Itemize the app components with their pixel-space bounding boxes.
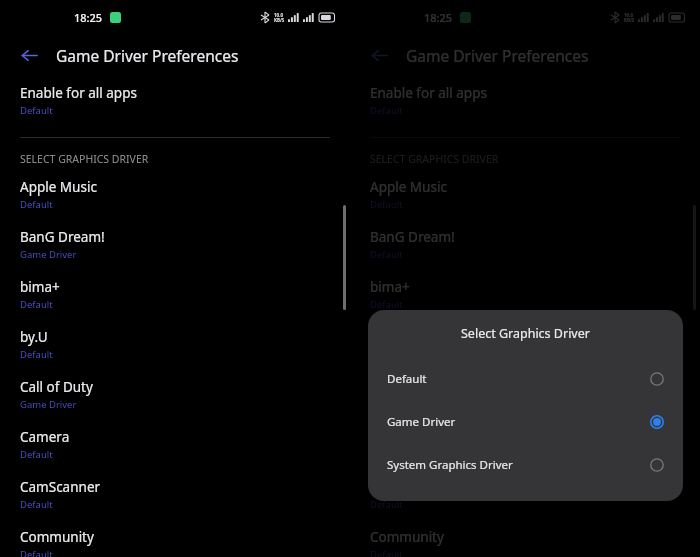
staticText: Apple Music xyxy=(20,178,97,196)
button[interactable]: BanG Dream! xyxy=(350,228,700,261)
staticText: Game Driver Preferences xyxy=(56,45,239,66)
button[interactable]: BanG Dream! xyxy=(0,228,350,261)
button[interactable]: CamScanner xyxy=(0,478,350,511)
button[interactable]: Apple Music xyxy=(0,178,350,211)
staticText: Default xyxy=(370,104,403,117)
staticText: Game Driver xyxy=(387,414,650,430)
button[interactable]: Game Driver xyxy=(368,400,683,443)
staticText: Default xyxy=(370,198,403,211)
staticText: Default xyxy=(370,498,403,511)
button[interactable]: Camera xyxy=(0,428,350,461)
staticText: Default xyxy=(370,298,403,311)
staticText: Select Graphics Driver xyxy=(461,325,590,342)
staticText: Default xyxy=(20,298,53,311)
button[interactable]: CamScanner xyxy=(350,478,700,511)
staticText: bima+ xyxy=(370,278,410,296)
button[interactable]: Community xyxy=(350,528,700,557)
button[interactable]: Enable for all apps xyxy=(350,84,700,117)
staticText: BanG Dream! xyxy=(20,228,105,246)
staticText: Game Driver xyxy=(20,398,77,411)
staticText: 10.0 KB/S xyxy=(274,12,285,24)
staticText: Default xyxy=(20,448,53,461)
staticText: BanG Dream! xyxy=(370,228,455,246)
staticText: Apple Music xyxy=(370,178,447,196)
staticText: Default xyxy=(387,371,650,387)
staticText: Enable for all apps xyxy=(20,84,137,102)
button[interactable]: Call of Duty xyxy=(350,378,700,411)
staticText: Default xyxy=(20,348,53,361)
staticText: CamScanner xyxy=(20,478,101,496)
button[interactable]: by.U xyxy=(0,328,350,361)
button[interactable]: Apple Music xyxy=(350,178,700,211)
staticText: Call of Duty xyxy=(20,378,93,396)
staticText: 10.0 KB/S xyxy=(624,12,635,24)
staticText: Community xyxy=(370,528,444,546)
staticText: Game Driver Preferences xyxy=(406,45,589,66)
staticText: Camera xyxy=(20,428,70,446)
staticText: Game Driver xyxy=(20,248,77,261)
staticText: Default xyxy=(20,548,53,557)
button[interactable]: bima+ xyxy=(0,278,350,311)
staticText: SELECT GRAPHICS DRIVER xyxy=(370,152,499,166)
button[interactable]: Back xyxy=(364,40,394,70)
button[interactable]: Enable for all apps xyxy=(0,84,350,117)
staticText: by.U xyxy=(20,328,48,346)
staticText: Default xyxy=(20,104,53,117)
staticText: Call of Duty xyxy=(370,378,443,396)
button[interactable]: Back xyxy=(14,40,44,70)
staticText: Default xyxy=(370,548,403,557)
button[interactable]: Community xyxy=(0,528,350,557)
staticText: bima+ xyxy=(20,278,60,296)
staticText: Default xyxy=(20,498,53,511)
staticText: Default xyxy=(370,248,403,261)
staticText: 18:25 xyxy=(424,10,453,25)
button[interactable]: Camera xyxy=(350,428,700,461)
staticText: System Graphics Driver xyxy=(387,457,650,473)
staticText: 18:25 xyxy=(74,10,103,25)
staticText: Enable for all apps xyxy=(370,84,487,102)
button[interactable]: Call of Duty xyxy=(0,378,350,411)
staticText: Default xyxy=(20,198,53,211)
staticText: SELECT GRAPHICS DRIVER xyxy=(20,152,149,166)
button[interactable]: System Graphics Driver xyxy=(368,443,683,486)
button[interactable]: by.U xyxy=(350,328,700,361)
button[interactable]: Default xyxy=(368,357,683,400)
staticText: Community xyxy=(20,528,94,546)
button[interactable]: bima+ xyxy=(350,278,700,311)
